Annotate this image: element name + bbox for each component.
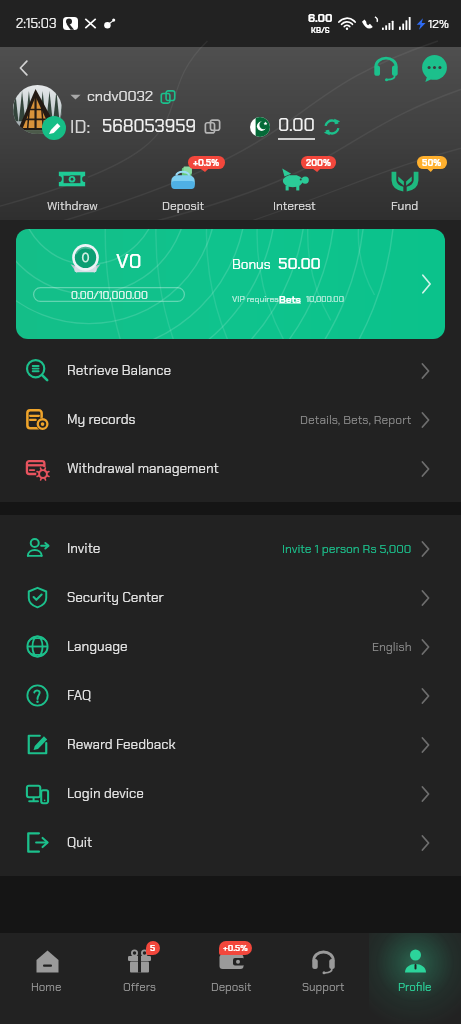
button[interactable]: Quit (0, 818, 461, 867)
button[interactable]: V0 (16, 229, 445, 339)
staticText: Invite (67, 540, 101, 558)
button[interactable]: +0.5% (139, 166, 227, 214)
staticText: Deposit (162, 198, 205, 214)
button[interactable]: Copy ID (204, 118, 221, 135)
staticText: 200% (306, 157, 331, 169)
staticText: Bets (279, 293, 301, 306)
staticText: 0.00 (278, 113, 315, 136)
staticText: 50% (422, 157, 442, 169)
staticText: Language (67, 638, 128, 656)
button[interactable]: Reward Feedback (0, 720, 461, 769)
staticText: 5 (150, 943, 156, 954)
staticText: +0.5% (223, 943, 248, 954)
button[interactable]: Withdraw (28, 166, 116, 214)
button[interactable]: Retrieve Balance (0, 346, 461, 395)
staticText: 12% (428, 16, 449, 32)
button[interactable]: Profile (369, 933, 461, 1024)
button[interactable]: Copy username (160, 89, 176, 105)
staticText: VIP requires (232, 294, 279, 305)
staticText: Login device (67, 785, 144, 803)
button[interactable]: Home (0, 933, 93, 1024)
staticText: Fund (391, 198, 419, 214)
staticText: Details, Bets, Report (300, 412, 412, 428)
staticText: 6.00 (308, 11, 333, 26)
staticText: Retrieve Balance (67, 362, 172, 380)
staticText: 2:15:03 (16, 15, 57, 32)
staticText: Deposit (211, 980, 252, 995)
button[interactable]: +0.5% (185, 933, 277, 1024)
staticText: 50.00 (278, 253, 321, 274)
staticText: Withdraw (47, 198, 98, 214)
staticText: cndv0032 (87, 87, 153, 106)
button[interactable]: FAQ (0, 671, 461, 720)
staticText: 0.00/10,000.00 (71, 288, 148, 302)
button[interactable]: Messages (417, 51, 451, 85)
staticText: 10,000.00 (306, 294, 344, 305)
button[interactable]: 200% (250, 166, 338, 214)
staticText: Quit (67, 834, 93, 852)
button[interactable]: Refresh balance (323, 118, 341, 136)
staticText: KB/S (311, 26, 330, 36)
staticText: Offers (123, 980, 156, 995)
button[interactable]: My records (0, 395, 461, 444)
staticText: Invite 1 person Rs 5,000 (282, 541, 412, 557)
staticText: My records (67, 411, 136, 429)
button[interactable]: Language (0, 622, 461, 671)
button[interactable]: Support (277, 933, 369, 1024)
staticText: 568053959 (102, 115, 196, 138)
staticText: Bonus (232, 256, 271, 274)
button[interactable]: Withdrawal management (0, 444, 461, 493)
staticText: Profile (398, 980, 432, 995)
staticText: +0.5% (193, 157, 220, 169)
staticText: Support (302, 980, 345, 995)
button[interactable]: Back (8, 52, 40, 84)
staticText: Security Center (67, 589, 164, 607)
staticText: V0 (116, 248, 142, 274)
button[interactable]: Customer support (369, 51, 403, 85)
staticText: ID: (70, 115, 91, 138)
button[interactable]: Security Center (0, 573, 461, 622)
staticText: Reward Feedback (67, 736, 176, 754)
button[interactable]: 50% (361, 166, 449, 214)
button[interactable]: Login device (0, 769, 461, 818)
button[interactable]: 5 (93, 933, 185, 1024)
staticText: Home (31, 980, 62, 995)
button[interactable]: Invite (0, 524, 461, 573)
staticText: Interest (273, 198, 316, 214)
staticText: FAQ (67, 687, 92, 705)
staticText: Withdrawal management (67, 460, 219, 478)
staticText: English (372, 639, 412, 655)
